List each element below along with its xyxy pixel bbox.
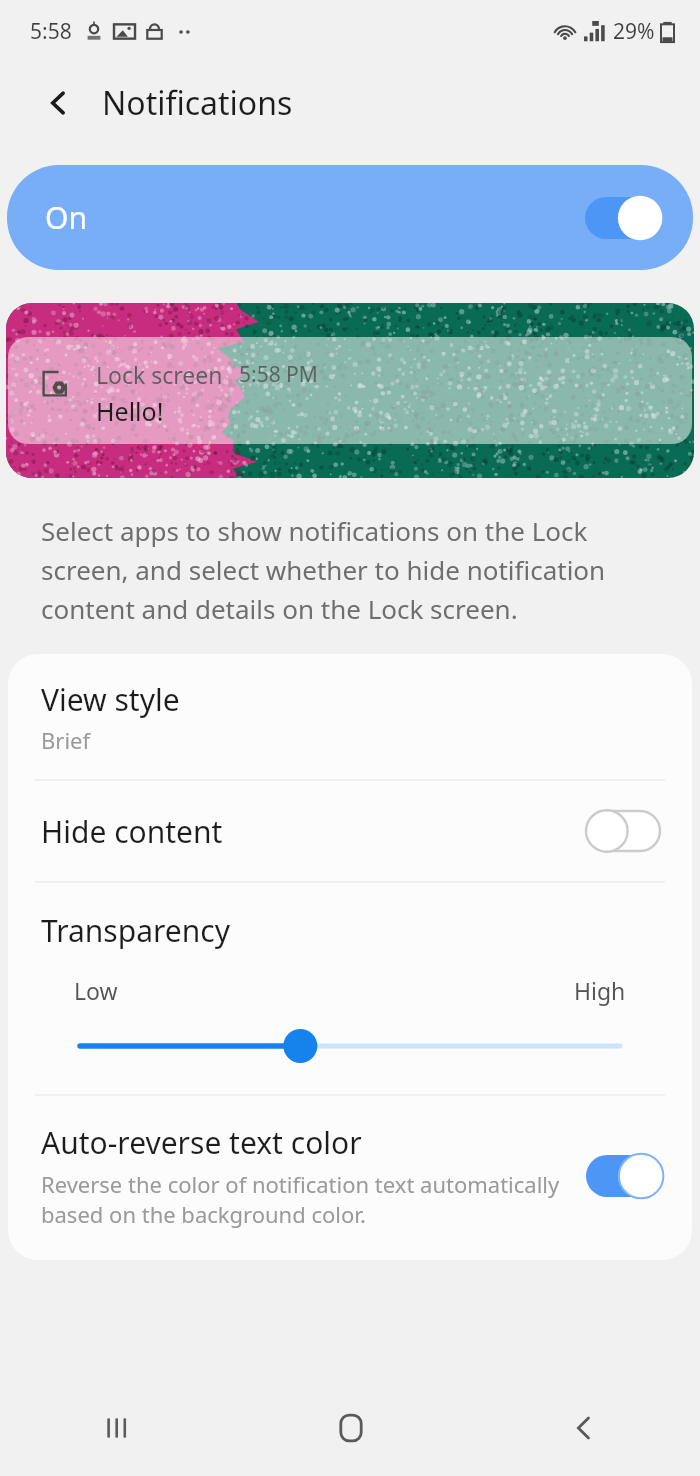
button[interactable]: Transparency slider — [8, 1024, 692, 1068]
staticText: 5:58 — [30, 17, 72, 46]
staticText: Low — [74, 975, 118, 1006]
button[interactable]: Back — [467, 1380, 700, 1476]
staticText: Lock screen — [96, 359, 223, 390]
staticText: Brief — [41, 725, 91, 755]
button[interactable]: Recents — [0, 1380, 234, 1476]
button[interactable]: Back — [36, 80, 82, 126]
button[interactable]: Auto-reverse text color — [8, 1096, 692, 1260]
button[interactable]: Hide content — [8, 781, 692, 881]
staticText: View style — [41, 679, 180, 720]
staticText: Hello! — [96, 394, 164, 428]
button[interactable]: Home — [234, 1380, 467, 1476]
staticText: Select apps to show notifications on the… — [41, 513, 659, 626]
staticText: 29% — [613, 17, 655, 46]
button[interactable]: View style — [8, 654, 692, 779]
staticText: Notifications — [102, 81, 293, 125]
staticText: Transparency — [41, 910, 230, 951]
staticText: High — [574, 975, 626, 1006]
staticText: Reverse the color of notification text a… — [41, 1169, 572, 1230]
staticText: Auto-reverse text color — [41, 1122, 362, 1163]
button[interactable]: Lock screen — [6, 303, 694, 478]
staticText: 5:58 PM — [239, 360, 318, 389]
staticText: Hide content — [41, 811, 223, 852]
button[interactable]: On — [7, 165, 693, 270]
staticText: On — [45, 197, 87, 238]
